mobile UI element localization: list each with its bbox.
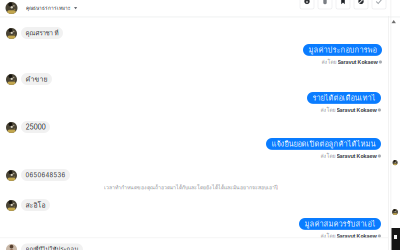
staticText: Saravut Kokaew bbox=[337, 107, 377, 113]
staticText: ส่งโดย bbox=[320, 152, 335, 159]
button[interactable]: สะอิโอ bbox=[21, 199, 50, 211]
button[interactable]: คำขาย bbox=[21, 73, 52, 85]
staticText: ส่งโดย bbox=[321, 58, 336, 65]
button[interactable]: คุณศราชา ที่ bbox=[21, 27, 63, 39]
staticText: มูลค่าสมควรรับสาเอไ bbox=[304, 219, 375, 229]
button[interactable]: มูลค่าสมควรรับสาเอไ bbox=[299, 218, 381, 230]
staticText: Saravut Kokaew bbox=[337, 233, 377, 239]
button[interactable]: Mute bbox=[300, 0, 314, 9]
button[interactable]: 25000 bbox=[21, 121, 50, 133]
button[interactable]: คุณพี่มีไปให้ประกอบ bbox=[21, 243, 83, 250]
staticText: แจ้งยืนยอดเปิดต่อลูกค้าได้ไหมน bbox=[271, 139, 375, 149]
staticText: ส่งโดย bbox=[320, 232, 335, 239]
button[interactable]: รายได้ต่อเดือนเทาไ bbox=[307, 92, 381, 104]
button[interactable]: แจ้งยืนยอดเปิดต่อลูกค้าได้ไหมน bbox=[266, 138, 381, 150]
button[interactable]: Delete bbox=[318, 0, 332, 9]
staticText: คำขาย bbox=[25, 75, 47, 83]
staticText: คุณพี่มีไปให้ประกอบ bbox=[25, 246, 78, 250]
staticText: 25000 bbox=[25, 124, 45, 130]
staticText: มูลค่าประกอบการพอ bbox=[308, 45, 376, 55]
staticText: Saravut Kokaew bbox=[337, 153, 377, 159]
staticText: คุณธนาธรการเหมาะ bbox=[26, 5, 71, 11]
staticText: เวลาทำกำหนดของคุณถ้าอวดมาได้กับและโดยยัง… bbox=[104, 184, 278, 191]
staticText: รายได้ต่อเดือนเทาไ bbox=[312, 93, 375, 103]
staticText: 0650648536 bbox=[25, 172, 65, 178]
staticText: สะอิโอ bbox=[25, 201, 45, 209]
button[interactable]: Mark as done bbox=[372, 0, 386, 9]
button[interactable]: Flag bbox=[336, 0, 350, 9]
button[interactable]: 0650648536 bbox=[21, 169, 70, 181]
staticText: Saravut Kokaew bbox=[338, 59, 378, 65]
staticText: คุณศราชา ที่ bbox=[25, 29, 58, 37]
button[interactable]: มูลค่าประกอบการพอ bbox=[303, 44, 382, 56]
staticText: ส่งโดย bbox=[320, 106, 335, 113]
button[interactable]: Block bbox=[354, 0, 368, 9]
